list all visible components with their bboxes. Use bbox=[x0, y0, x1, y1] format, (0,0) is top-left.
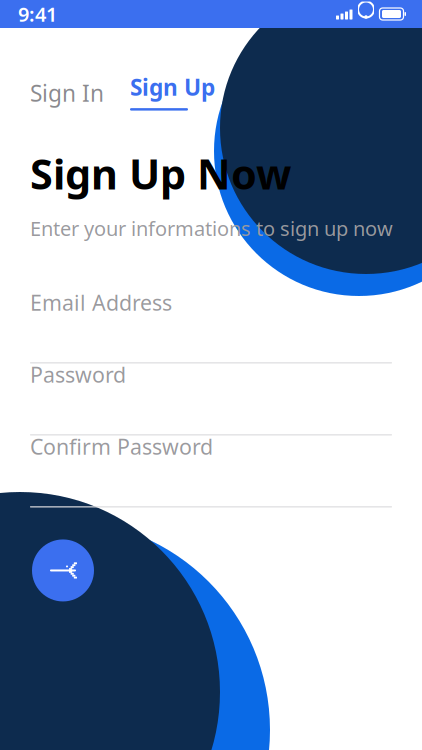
button[interactable]: Sign Up bbox=[130, 72, 215, 114]
staticText: Password bbox=[30, 360, 126, 389]
staticText: Confirm Password bbox=[30, 432, 213, 461]
staticText: Email Address bbox=[30, 288, 172, 317]
button[interactable]: Continue bbox=[32, 539, 94, 601]
staticText: Sign Up Now bbox=[30, 146, 291, 201]
button[interactable]: Sign In bbox=[30, 72, 104, 114]
staticText: 9:41 bbox=[18, 1, 57, 27]
staticText: Enter your informations to sign up now bbox=[30, 215, 393, 241]
staticText: Sign In bbox=[30, 78, 104, 108]
staticText: Sign Up bbox=[130, 72, 215, 102]
